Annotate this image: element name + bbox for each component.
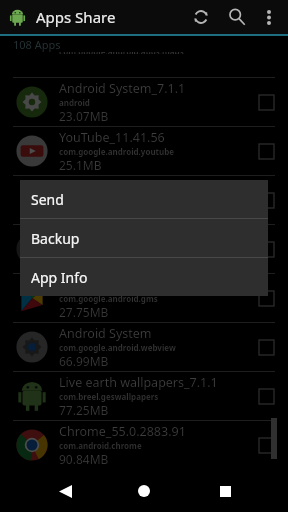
button[interactable]: Select Live earth wallpapers_7.1.1 bbox=[251, 381, 281, 411]
button[interactable]: Google Play services bbox=[0, 225, 288, 273]
staticText: App Info bbox=[31, 268, 88, 287]
staticText: 19.24MB bbox=[59, 206, 109, 222]
staticText: 27.75MB bbox=[59, 304, 109, 320]
button[interactable]: Select (470-164005921) bbox=[251, 283, 281, 313]
staticText: Chrome_55.0.2883.91 bbox=[59, 423, 186, 440]
staticText: Android System_7.1.1 bbox=[59, 80, 186, 97]
staticText: 41.02MB bbox=[59, 255, 109, 271]
staticText: android bbox=[59, 97, 90, 108]
button[interactable]: Backup bbox=[20, 219, 268, 257]
button[interactable]: Home bbox=[131, 478, 157, 504]
staticText: 66.99MB bbox=[59, 353, 109, 369]
staticText: Google Play services bbox=[59, 227, 179, 244]
button[interactable]: App Info bbox=[20, 258, 268, 296]
button[interactable]: Live earth wallpapers_7.1.1 bbox=[0, 372, 288, 420]
staticText: YouTube_11.41.56 bbox=[59, 129, 165, 146]
button[interactable]: YouTube_11.41.56 bbox=[0, 127, 288, 175]
button[interactable]: Chrome_55.0.2883.91 bbox=[0, 421, 288, 469]
button[interactable]: Android System WebView_55.0.2883.91 bbox=[0, 323, 288, 371]
staticText: Android System WebView_55.0.2883.91 bbox=[59, 325, 251, 342]
staticText: 23.07MB bbox=[59, 108, 109, 124]
staticText: com.google.android.apps.maps bbox=[59, 52, 184, 54]
staticText: Backup bbox=[31, 229, 80, 248]
button[interactable]: Select Google Play services bbox=[251, 234, 281, 264]
staticText: (470-164005921) bbox=[59, 276, 157, 293]
button[interactable]: Recent apps bbox=[212, 478, 238, 504]
staticText: com.google.android.youtube bbox=[59, 146, 175, 157]
staticText: com.breel.geswallpapers bbox=[59, 391, 159, 402]
button[interactable]: Maps_9.41.0 bbox=[0, 52, 288, 54]
staticText: com.android.vending bbox=[59, 195, 144, 206]
staticText: 90.84MB bbox=[59, 451, 109, 467]
button[interactable]: More options bbox=[255, 0, 283, 34]
button[interactable]: Select Android System WebView_55.0.2883.… bbox=[251, 332, 281, 362]
staticText: Google Play Store_7.5.08 bbox=[59, 178, 204, 195]
staticText: com.google.android.webview bbox=[59, 342, 176, 353]
staticText: Send bbox=[31, 190, 64, 209]
button[interactable]: (470-164005921) bbox=[0, 274, 288, 322]
staticText: com.google.android.gms bbox=[59, 244, 158, 255]
staticText: 25.1MB bbox=[59, 157, 102, 173]
button[interactable]: Select Google Play Store_7.5.08 bbox=[251, 185, 281, 215]
button[interactable]: Send bbox=[20, 180, 268, 218]
staticText: Live earth wallpapers_7.1.1 bbox=[59, 374, 218, 391]
staticText: com.android.chrome bbox=[59, 440, 142, 451]
button[interactable]: Search bbox=[219, 0, 255, 34]
button[interactable]: Select YouTube_11.41.56 bbox=[251, 136, 281, 166]
button[interactable]: Refresh bbox=[183, 0, 219, 34]
staticText: Apps Share bbox=[36, 7, 116, 27]
staticText: 77.25MB bbox=[59, 402, 109, 418]
staticText: 108 Apps bbox=[13, 37, 61, 52]
button[interactable]: Select Chrome_55.0.2883.91 bbox=[251, 430, 281, 460]
button[interactable]: Back bbox=[52, 478, 78, 504]
staticText: com.google.android.gms bbox=[59, 293, 158, 304]
button[interactable]: Google Play Store_7.5.08 bbox=[0, 176, 288, 224]
button[interactable]: Select Android System_7.1.1 bbox=[251, 87, 281, 117]
button[interactable]: Android System_7.1.1 bbox=[0, 78, 288, 126]
